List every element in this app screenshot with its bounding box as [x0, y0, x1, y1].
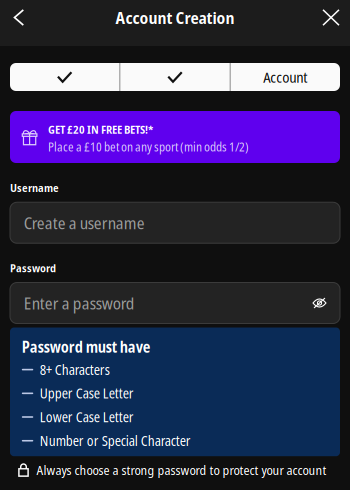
- staticText: Create a username: [24, 211, 145, 234]
- staticText: Place a £10 bet on any sport (min odds 1…: [48, 139, 249, 155]
- button[interactable]: Close: [311, 1, 350, 34]
- button[interactable]: Account: [231, 63, 340, 91]
- button[interactable]: Show password: [307, 289, 332, 317]
- staticText: Upper Case Letter: [40, 384, 134, 403]
- staticText: Number or Special Character: [40, 431, 191, 450]
- staticText: 8+ Characters: [40, 360, 110, 379]
- button[interactable]: Back: [0, 1, 35, 34]
- staticText: Password: [10, 260, 56, 276]
- staticText: Lower Case Letter: [40, 408, 134, 426]
- staticText: Enter a password: [24, 292, 135, 314]
- button[interactable]: Step 2 complete: [120, 63, 230, 91]
- staticText: GET £20 IN FREE BETS!*: [48, 122, 153, 137]
- staticText: Always choose a strong password to prote…: [36, 461, 326, 479]
- staticText: Password must have: [22, 336, 151, 357]
- staticText: Account Creation: [115, 6, 234, 29]
- staticText: Account: [263, 67, 307, 87]
- button[interactable]: Step 1 complete: [10, 63, 119, 91]
- staticText: Username: [10, 180, 59, 195]
